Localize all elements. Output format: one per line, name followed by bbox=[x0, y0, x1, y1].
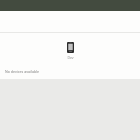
staticText: Dev bbox=[67, 55, 74, 60]
button[interactable]: Device bbox=[0, 42, 140, 60]
staticText: No devices available bbox=[5, 69, 40, 74]
